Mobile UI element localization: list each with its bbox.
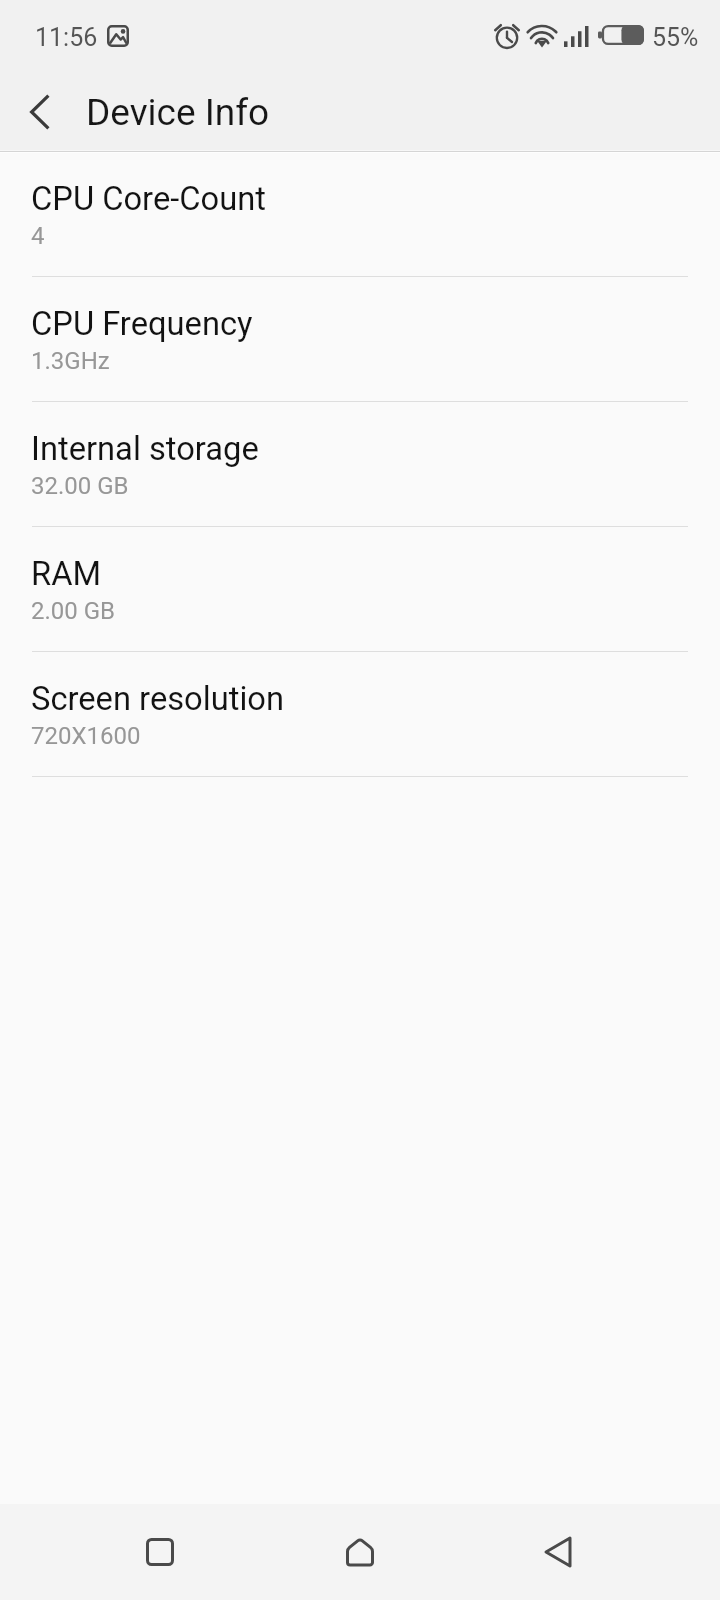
staticText: CPU Frequency [31, 305, 253, 343]
button[interactable]: Back [0, 79, 80, 143]
staticText: Internal storage [31, 430, 259, 468]
staticText: 55% [652, 23, 699, 52]
staticText: Screen resolution [31, 680, 285, 718]
button[interactable]: CPU Core-Count [0, 152, 720, 277]
staticText: 11:56 [35, 23, 98, 52]
button[interactable]: Internal storage [0, 402, 720, 527]
staticText: RAM [31, 555, 102, 593]
button[interactable]: Back [522, 1516, 594, 1588]
button[interactable]: Screen resolution [0, 652, 720, 777]
staticText: CPU Core-Count [31, 180, 266, 218]
staticText: 1.3GHz [31, 347, 110, 375]
button[interactable]: CPU Frequency [0, 277, 720, 402]
staticText: 2.00 GB [31, 597, 116, 625]
staticText: 4 [31, 222, 45, 250]
button[interactable]: Recents [124, 1516, 196, 1588]
staticText: 32.00 GB [31, 472, 129, 500]
button[interactable]: Home [324, 1516, 396, 1588]
staticText: 720X1600 [31, 722, 141, 750]
button[interactable]: RAM [0, 527, 720, 652]
staticText: Device Info [86, 91, 270, 134]
